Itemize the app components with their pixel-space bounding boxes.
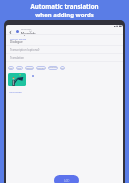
button[interactable]: Expand — [29, 30, 32, 33]
staticText: Transcription (optional) — [10, 48, 40, 52]
button[interactable]: Image — [8, 73, 26, 86]
button[interactable]: ADD — [54, 175, 79, 183]
staticText: when adding words — [35, 11, 94, 19]
button[interactable]: Add image — [9, 90, 22, 93]
button[interactable]: Back — [7, 29, 13, 35]
staticText: My words — [21, 32, 36, 36]
staticText: ADD — [64, 179, 70, 183]
button[interactable]: speech — [25, 66, 34, 70]
button[interactable]: conv — [60, 66, 65, 70]
staticText: dialogue — [37, 67, 46, 70]
staticText: talk — [9, 67, 13, 70]
staticText: speech — [26, 67, 33, 70]
staticText: Translation — [10, 56, 25, 60]
staticText: Word or phrase — [10, 38, 26, 41]
staticText: chat — [17, 67, 22, 70]
staticText: Automatic translation — [30, 2, 99, 10]
staticText: Dictionary — [21, 28, 32, 31]
staticText: Dialogue — [10, 40, 23, 44]
button[interactable]: talk — [8, 66, 14, 70]
staticText: conv — [60, 67, 65, 70]
button[interactable]: Dictionary — [21, 28, 36, 36]
button[interactable]: dialogue — [36, 66, 46, 70]
button[interactable]: chat — [16, 66, 23, 70]
staticText: discussion — [48, 66, 58, 70]
button[interactable]: discussion — [48, 66, 58, 70]
